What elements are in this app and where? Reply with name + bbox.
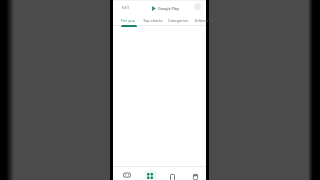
button[interactable] [142,168,158,180]
button[interactable] [119,168,135,180]
staticText: Categories [168,18,189,23]
staticText: Editors' ch [195,18,215,23]
staticText: Google Play [158,6,179,11]
button[interactable] [194,3,201,10]
button[interactable]: Editors' ch [195,18,215,26]
button[interactable] [188,168,204,180]
staticText: For you [121,18,136,23]
button[interactable]: Google Play [152,5,192,11]
button[interactable]: Categories [168,18,189,26]
button[interactable]: Top charts [143,18,163,26]
button[interactable]: For you [121,18,136,26]
staticText: Top charts [143,18,163,23]
button[interactable] [165,168,181,180]
staticText: 5:51 [122,5,129,10]
